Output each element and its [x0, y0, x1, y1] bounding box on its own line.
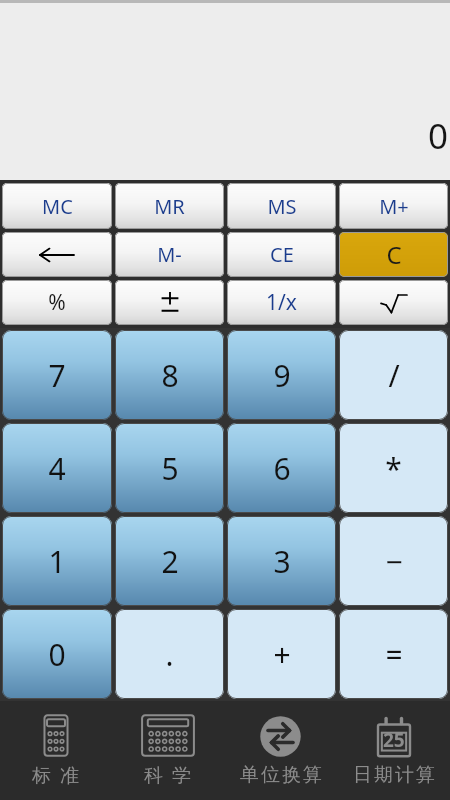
button[interactable]: C [339, 232, 448, 277]
button[interactable]: 8 [115, 330, 224, 420]
button[interactable]: 4 [2, 423, 112, 513]
staticText: MC [42, 193, 73, 220]
staticText: 科 学 [144, 762, 193, 788]
button[interactable]: % [2, 280, 112, 325]
staticText: MS [267, 193, 297, 220]
button[interactable]: Scientific calculator [112, 701, 224, 800]
staticText: 1 [48, 541, 66, 582]
staticText: 标 准 [32, 762, 81, 788]
button[interactable]: 2 [115, 516, 224, 606]
staticText: + [273, 634, 291, 675]
button[interactable]: Standard calculator [0, 701, 112, 800]
staticText: 8 [161, 355, 179, 396]
button[interactable]: + [227, 609, 336, 699]
staticText: 日期计算 [352, 763, 436, 787]
staticText: 2 [161, 541, 179, 582]
staticText: 4 [48, 448, 66, 489]
button[interactable]: − [339, 516, 448, 606]
button[interactable]: Square root [339, 280, 448, 325]
button[interactable]: 9 [227, 330, 336, 420]
staticText: 单位换算 [239, 763, 323, 787]
button[interactable]: Unit conversion [224, 701, 337, 800]
staticText: 0 [427, 112, 448, 160]
button[interactable]: 7 [2, 330, 112, 420]
staticText: − [385, 541, 403, 582]
button[interactable]: * [339, 423, 448, 513]
staticText: = [385, 634, 403, 675]
button[interactable]: / [339, 330, 448, 420]
button[interactable]: MR [115, 183, 224, 229]
staticText: 7 [48, 355, 66, 396]
button[interactable]: . [115, 609, 224, 699]
button[interactable]: Plus minus sign [115, 280, 224, 325]
staticText: MR [154, 193, 185, 220]
staticText: CE [270, 241, 294, 268]
button[interactable]: Backspace [2, 232, 112, 277]
button[interactable]: CE [227, 232, 336, 277]
staticText: M+ [379, 193, 409, 220]
staticText: 25 [383, 727, 405, 753]
staticText: 3 [273, 541, 291, 582]
staticText: 1/x [266, 288, 297, 317]
staticText: C [386, 238, 402, 271]
button[interactable]: Date calculation [337, 701, 450, 800]
staticText: . [165, 634, 174, 675]
staticText: % [48, 288, 66, 317]
button[interactable]: = [339, 609, 448, 699]
button[interactable]: MS [227, 183, 336, 229]
button[interactable]: 0 [2, 609, 112, 699]
staticText: / [388, 355, 400, 396]
button[interactable]: 3 [227, 516, 336, 606]
staticText: 0 [48, 634, 66, 675]
staticText: M- [157, 241, 182, 268]
staticText: 5 [161, 448, 179, 489]
button[interactable]: 6 [227, 423, 336, 513]
button[interactable]: 5 [115, 423, 224, 513]
staticText: 9 [273, 355, 291, 396]
button[interactable]: M- [115, 232, 224, 277]
staticText: * [385, 448, 402, 489]
button[interactable]: 1 [2, 516, 112, 606]
button[interactable]: MC [2, 183, 112, 229]
button[interactable]: M+ [339, 183, 448, 229]
staticText: 6 [273, 448, 291, 489]
button[interactable]: 1/x [227, 280, 336, 325]
